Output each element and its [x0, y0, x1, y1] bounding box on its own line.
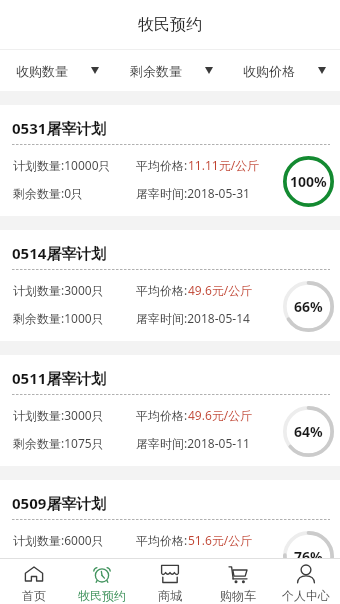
staticText: 66%: [294, 297, 323, 316]
staticText: 屠宰时间:2018-05-09: [136, 560, 250, 576]
staticText: 76%: [294, 547, 323, 566]
staticText: 平均价格:: [136, 532, 188, 548]
staticText: 个人中心: [282, 588, 330, 603]
staticText: 49.6元/公斤: [188, 282, 253, 298]
staticText: 剩余数量: [130, 63, 182, 79]
button[interactable]: 收购数量: [0, 50, 114, 91]
staticText: 屠宰时间:2018-05-14: [136, 310, 250, 326]
staticText: 11.11元/公斤: [188, 157, 260, 173]
staticText: 剩余数量:1000只: [13, 310, 104, 326]
staticText: 收购价格: [243, 63, 295, 79]
staticText: 0514屠宰计划: [12, 243, 107, 263]
staticText: 平均价格:: [136, 157, 188, 173]
staticText: 屠宰时间:2018-05-31: [136, 185, 250, 201]
staticText: 平均价格:: [136, 407, 188, 423]
staticText: 100%: [290, 172, 327, 191]
button[interactable]: 个人中心: [272, 559, 340, 604]
button[interactable]: 0514屠宰计划: [0, 230, 340, 341]
staticText: 51.6元/公斤: [188, 532, 253, 548]
button[interactable]: 0531屠宰计划: [0, 105, 340, 216]
staticText: 计划数量:10000只: [13, 157, 111, 173]
staticText: 0509屠宰计划: [12, 493, 107, 513]
staticText: 剩余数量:1075只: [13, 435, 104, 451]
button[interactable]: 剩余数量: [114, 50, 227, 91]
button[interactable]: 首页: [0, 559, 68, 604]
button[interactable]: 0509屠宰计划: [0, 480, 340, 558]
staticText: 64%: [294, 422, 323, 441]
staticText: 商城: [158, 588, 182, 603]
staticText: 剩余数量:1400只: [13, 560, 104, 576]
staticText: 平均价格:: [136, 282, 188, 298]
staticText: 49.6元/公斤: [188, 407, 253, 423]
button[interactable]: 牧民预约: [68, 559, 136, 604]
staticText: 计划数量:6000只: [13, 532, 104, 548]
staticText: 牧民预约: [78, 588, 126, 603]
button[interactable]: 收购价格: [227, 50, 340, 91]
button[interactable]: 购物车: [204, 559, 272, 604]
staticText: 剩余数量:0只: [13, 185, 84, 201]
staticText: 0531屠宰计划: [12, 118, 107, 138]
button[interactable]: 0511屠宰计划: [0, 355, 340, 466]
staticText: 计划数量:3000只: [13, 282, 104, 298]
button[interactable]: 商城: [136, 559, 204, 604]
staticText: 屠宰时间:2018-05-11: [136, 435, 250, 451]
staticText: 牧民预约: [138, 15, 202, 35]
staticText: 计划数量:3000只: [13, 407, 104, 423]
staticText: 首页: [22, 588, 46, 603]
staticText: 收购数量: [16, 63, 68, 79]
staticText: 购物车: [220, 588, 256, 603]
staticText: 0511屠宰计划: [12, 368, 107, 388]
